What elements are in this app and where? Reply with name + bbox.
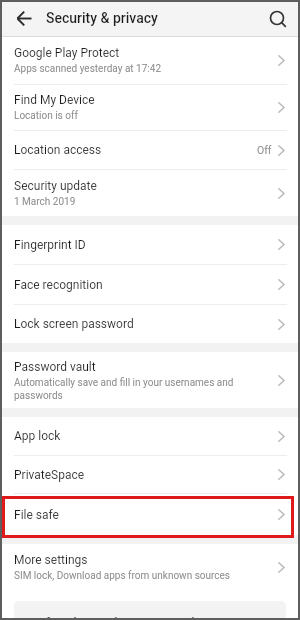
staticText: Lock files of various formats in File sa… (22, 617, 199, 618)
button[interactable] (262, 2, 296, 36)
staticText: Location access (14, 143, 102, 157)
button[interactable]: File safe (2, 494, 298, 535)
button[interactable]: Security update (2, 170, 298, 216)
staticText: Face recognition (14, 278, 103, 292)
staticText: PrivateSpace (14, 468, 85, 482)
staticText: Off (257, 144, 272, 156)
button[interactable] (10, 5, 38, 33)
button[interactable]: Lock screen password (2, 305, 298, 343)
button[interactable]: Location access (2, 131, 298, 169)
button[interactable]: Password vault (2, 352, 298, 408)
staticText: Location is off (14, 110, 78, 122)
staticText: Google Play Protect (14, 46, 120, 60)
staticText: Find My Device (14, 93, 95, 107)
button[interactable]: App lock (2, 417, 298, 455)
button[interactable]: More settings (2, 544, 298, 590)
staticText: 1 March 2019 (14, 196, 76, 208)
staticText: App lock (14, 429, 61, 443)
staticText: Apps scanned yesterday at 17:42 (14, 63, 162, 75)
staticText: Security update (14, 179, 97, 193)
staticText: Automatically save and fill in your user… (14, 377, 258, 401)
staticText: SIM lock, Download apps from unknown sou… (14, 570, 231, 582)
button[interactable]: Find My Device (2, 85, 298, 130)
button[interactable]: PrivateSpace (2, 456, 298, 493)
button[interactable]: Fingerprint ID (2, 225, 298, 264)
button[interactable]: Face recognition (2, 265, 298, 304)
button[interactable]: Google Play Protect (2, 37, 298, 84)
staticText: Password vault (14, 360, 96, 374)
staticText: More settings (14, 553, 88, 567)
staticText: Fingerprint ID (14, 238, 86, 252)
staticText: Security & privacy (46, 10, 158, 26)
staticText: Lock screen password (14, 317, 134, 331)
staticText: File safe (14, 508, 59, 522)
